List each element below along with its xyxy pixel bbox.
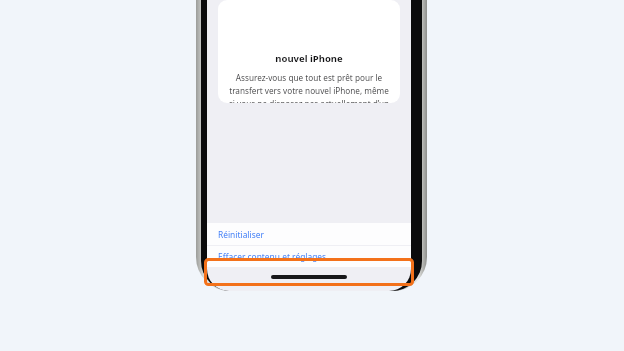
- other: Highlight: Effacer contenu et réglages: [204, 258, 414, 286]
- staticText: Effacer contenu et réglages: [218, 251, 327, 262]
- button[interactable]: Réinitialiser: [207, 223, 411, 245]
- button[interactable]: Effacer contenu et réglages: [207, 246, 411, 267]
- staticText: Assurez-vous que tout est prêt pour le t…: [227, 72, 391, 103]
- staticText: nouvel iPhone: [275, 52, 343, 65]
- staticText: Réinitialiser: [218, 229, 264, 240]
